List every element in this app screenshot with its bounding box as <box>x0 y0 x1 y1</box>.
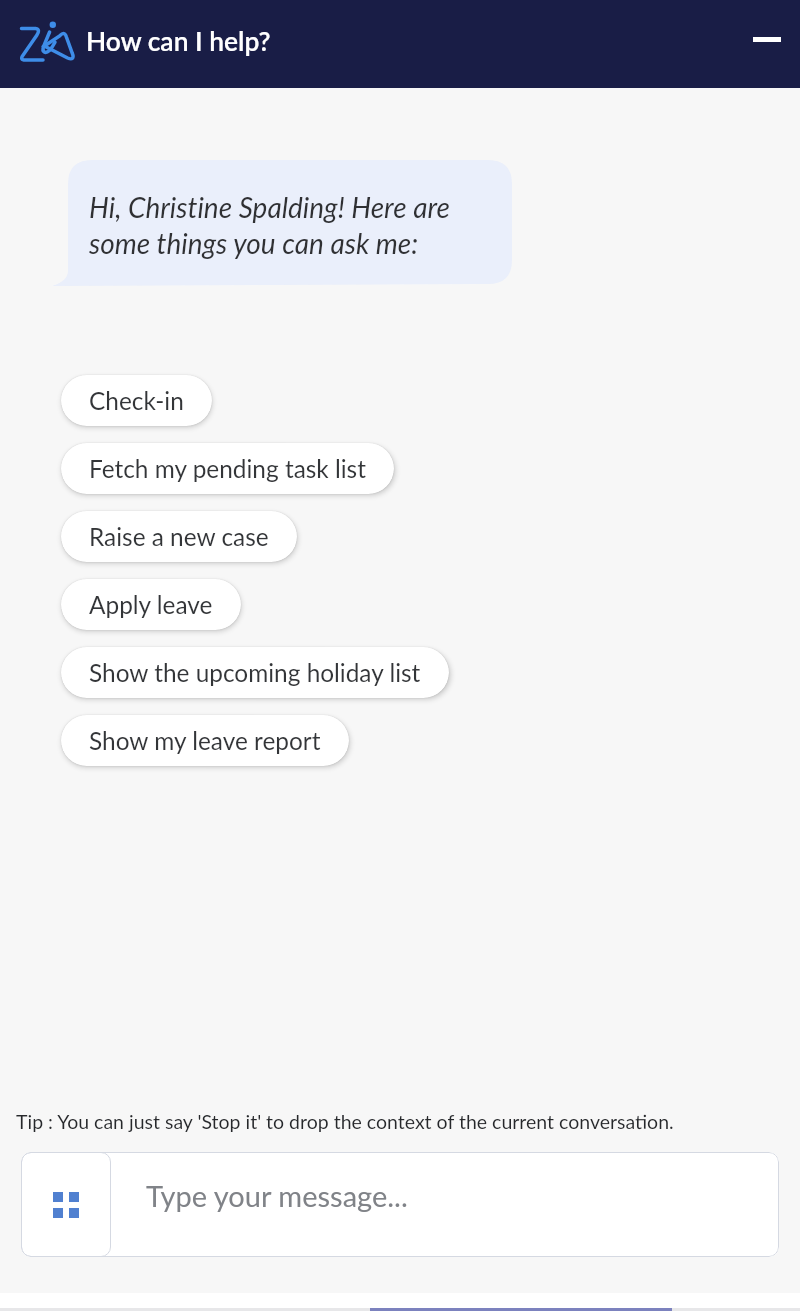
staticText: Show the upcoming holiday list <box>89 658 421 687</box>
button[interactable]: Apps <box>21 1152 111 1257</box>
staticText: Hi, Christine Spalding! Here are some th… <box>89 190 450 260</box>
button[interactable]: Fetch my pending task list <box>61 443 394 494</box>
staticText: Apply leave <box>89 590 213 619</box>
staticText: Check-in <box>89 386 184 415</box>
staticText: How can I help? <box>86 25 271 57</box>
staticText: Tip : You can just say 'Stop it' to drop… <box>16 1110 674 1133</box>
button[interactable]: Apply leave <box>61 579 241 630</box>
staticText: Show my leave report <box>89 726 321 755</box>
button[interactable]: Show my leave report <box>61 715 349 766</box>
button[interactable]: Raise a new case <box>61 511 297 562</box>
staticText: Raise a new case <box>89 522 269 551</box>
button[interactable]: Check-in <box>61 375 212 426</box>
button[interactable]: Show the upcoming holiday list <box>61 647 449 698</box>
button[interactable]: Minimize <box>738 0 800 88</box>
staticText: Type your message... <box>146 1178 408 1213</box>
staticText: Fetch my pending task list <box>89 454 366 483</box>
